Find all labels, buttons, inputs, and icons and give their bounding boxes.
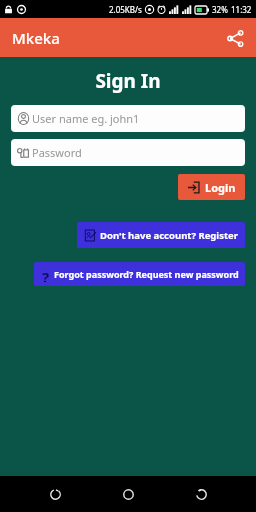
staticText: ? [42,267,50,282]
staticText: Password [32,145,82,160]
staticText: 11:32 [231,4,252,15]
staticText: Forgot password? Request new password [54,268,239,280]
button[interactable]: Share [220,23,250,53]
staticText: Sign In [0,68,256,94]
button[interactable]: Home [110,476,146,512]
staticText: User name eg. john1 [32,111,140,126]
button[interactable]: ? [34,262,245,286]
button[interactable]: Back [37,476,73,512]
staticText: Don't have account? Register [100,229,238,242]
button[interactable]: Recent apps [183,476,219,512]
button[interactable]: Login [178,174,245,200]
staticText: 2.05KB/s [109,4,142,15]
button[interactable]: User name eg. john1 [11,105,245,132]
button[interactable]: Don't have account? Register [77,222,245,248]
staticText: Login [205,180,236,195]
staticText: 32% [212,4,228,15]
button[interactable]: Password [11,139,245,166]
staticText: Mkeka [12,28,60,48]
